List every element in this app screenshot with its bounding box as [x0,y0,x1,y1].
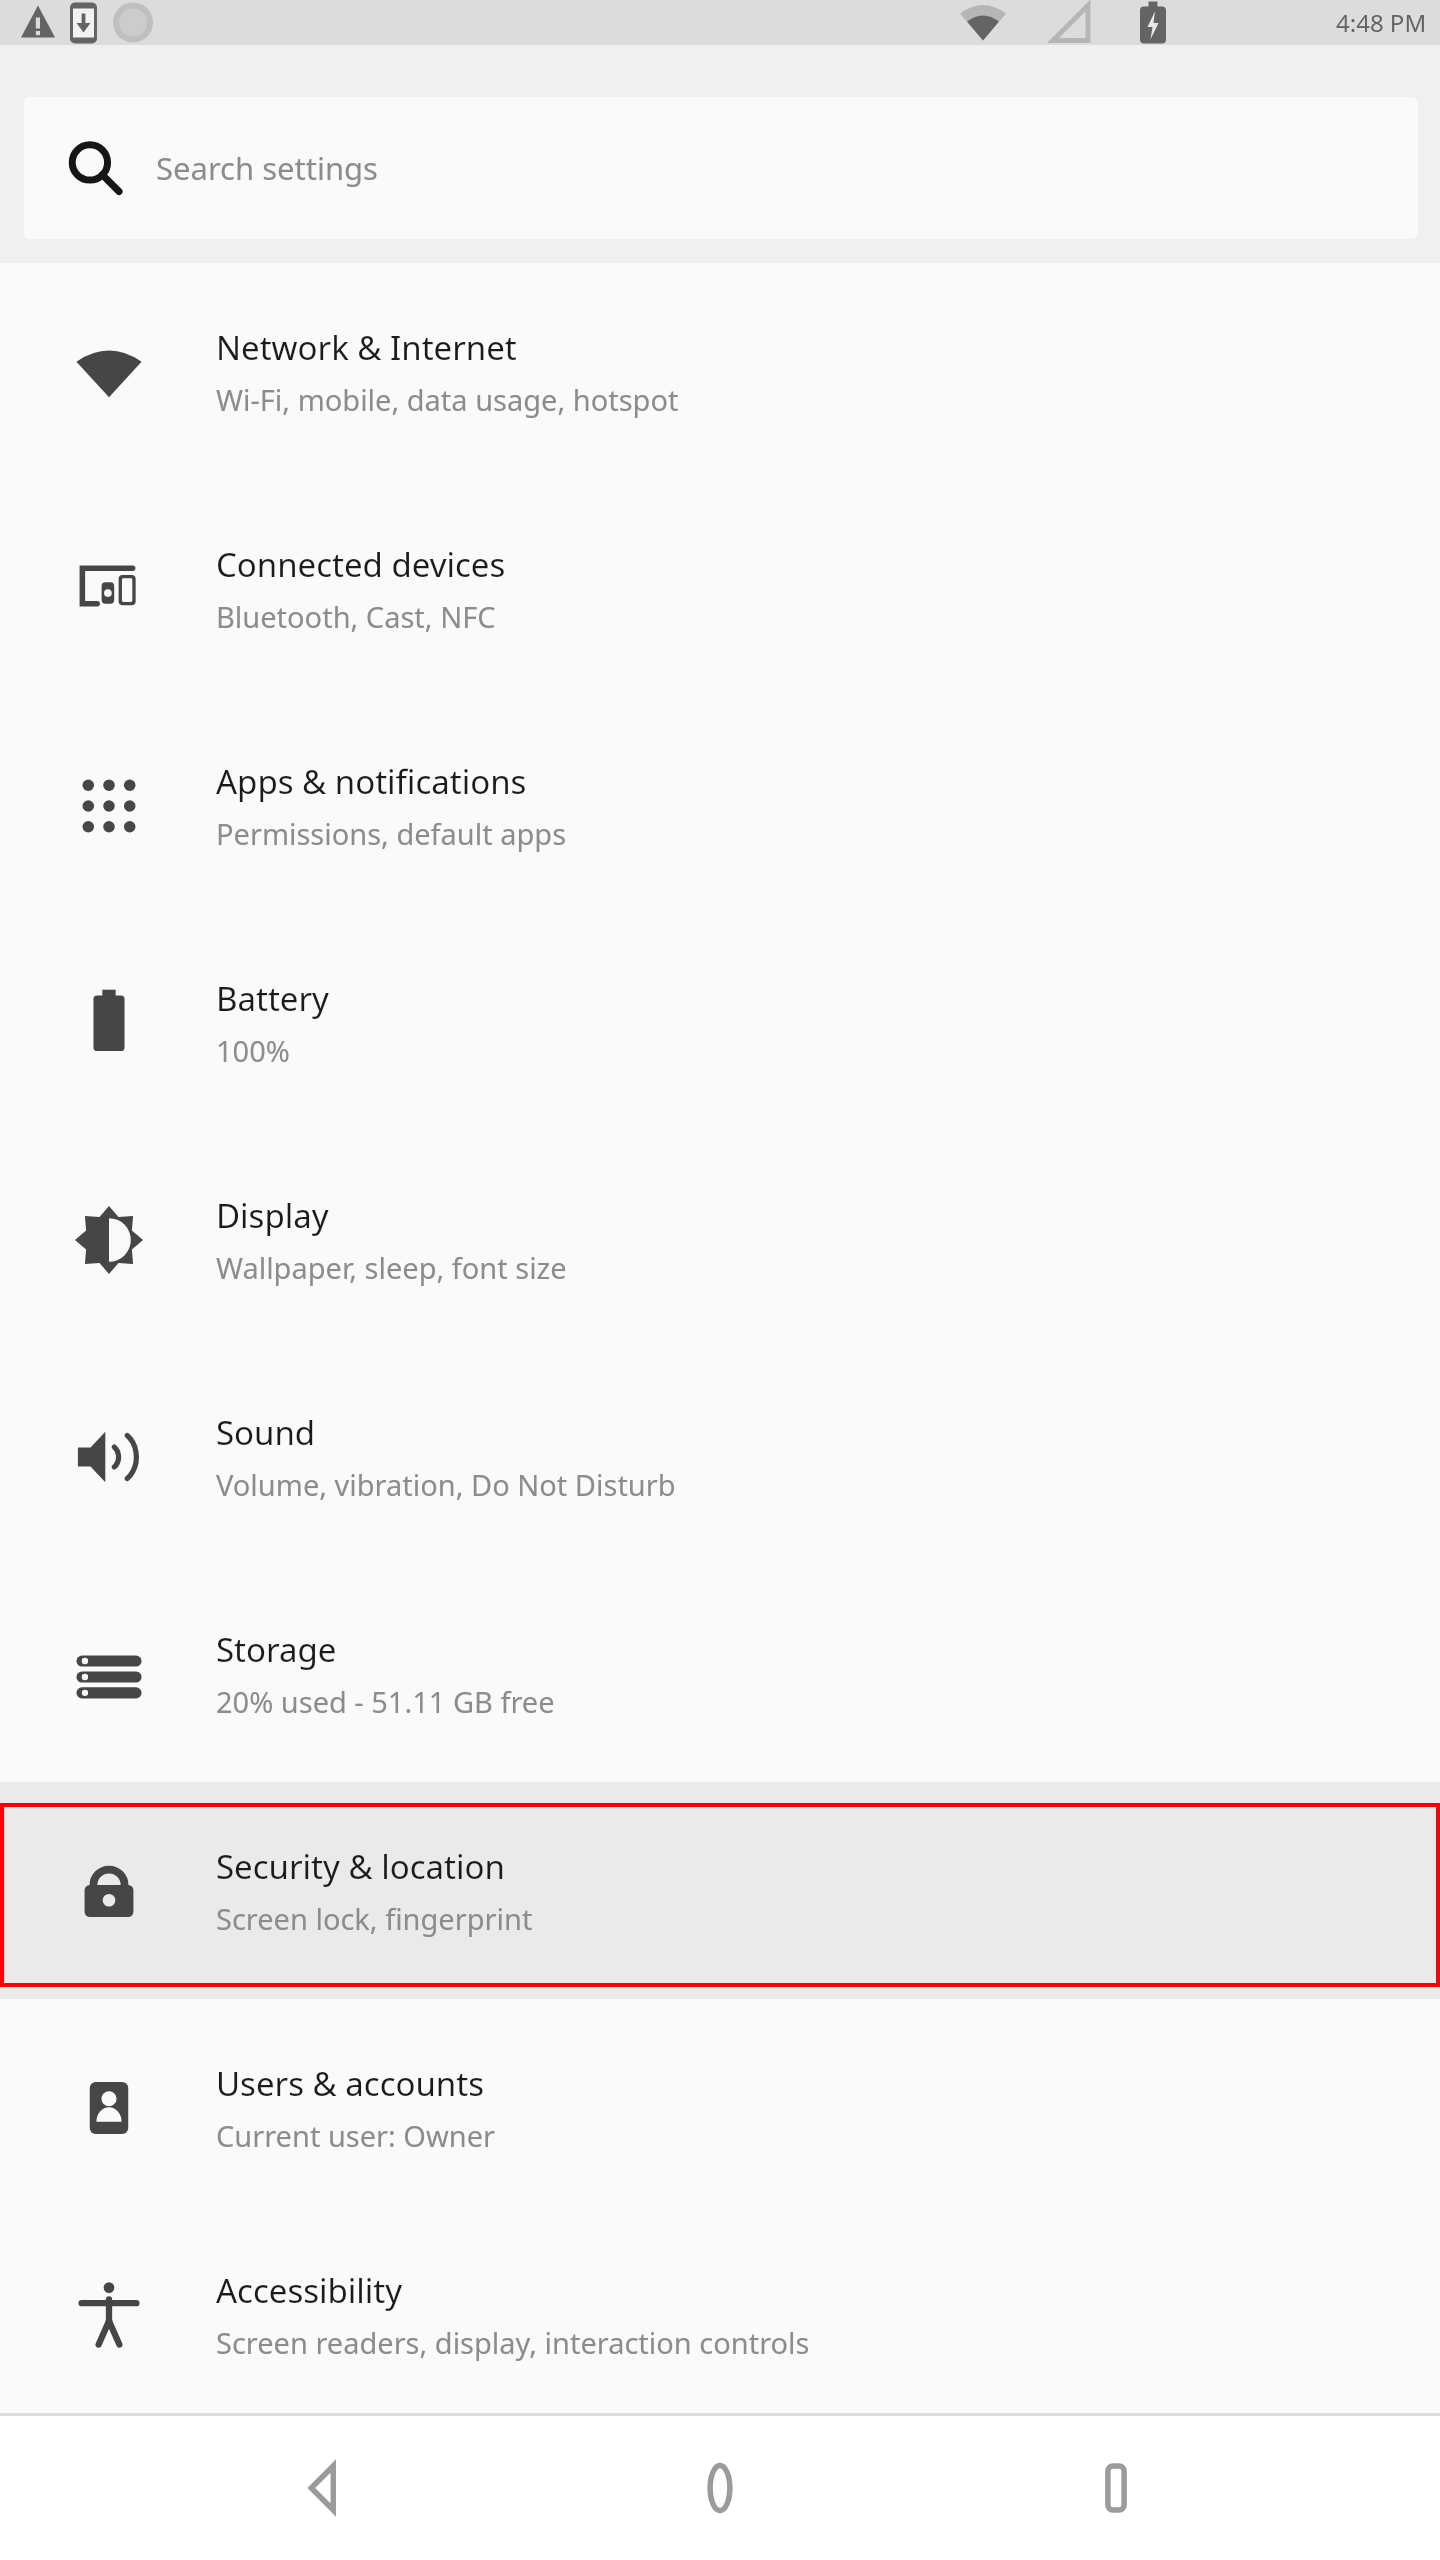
staticText: Screen lock, fingerprint [216,1899,533,1938]
button[interactable]: Sound [0,1348,1440,1565]
button[interactable]: Connected devices [0,480,1440,697]
button[interactable]: Recent apps [1044,2416,1188,2560]
button[interactable]: Network & Internet [0,263,1440,480]
button[interactable]: Home [648,2416,792,2560]
button[interactable]: Users & accounts [0,1999,1440,2216]
staticText: Connected devices [216,542,506,587]
button[interactable]: Storage [0,1565,1440,1782]
staticText: Current user: Owner [216,2116,496,2155]
staticText: Network & Internet [216,325,517,370]
staticText: Storage [216,1627,337,1672]
staticText: Battery [216,976,329,1021]
button[interactable]: Security & location [0,1782,1440,1999]
staticText: Accessibility [216,2268,403,2313]
button[interactable]: Back [252,2416,396,2560]
staticText: 20% used - 51.11 GB free [216,1682,555,1721]
staticText: Display [216,1193,329,1238]
staticText: 4:48 PM [1336,6,1427,39]
staticText: Apps & notifications [216,759,527,804]
staticText: Security & location [216,1844,505,1889]
button[interactable]: Search settings [24,97,1418,239]
staticText: Permissions, default apps [216,814,567,853]
staticText: Bluetooth, Cast, NFC [216,597,496,636]
staticText: Screen readers, display, interaction con… [216,2323,810,2362]
staticText: Volume, vibration, Do Not Disturb [216,1465,676,1504]
button[interactable]: Battery [0,914,1440,1131]
staticText: Search settings [156,147,378,189]
staticText: Users & accounts [216,2061,484,2106]
staticText: Wallpaper, sleep, font size [216,1248,567,1287]
button[interactable]: Display [0,1131,1440,1348]
button[interactable]: Accessibility [0,2216,1440,2413]
button[interactable]: Apps & notifications [0,697,1440,914]
staticText: Wi-Fi, mobile, data usage, hotspot [216,380,679,419]
staticText: 100% [216,1031,290,1070]
staticText: Sound [216,1410,316,1455]
